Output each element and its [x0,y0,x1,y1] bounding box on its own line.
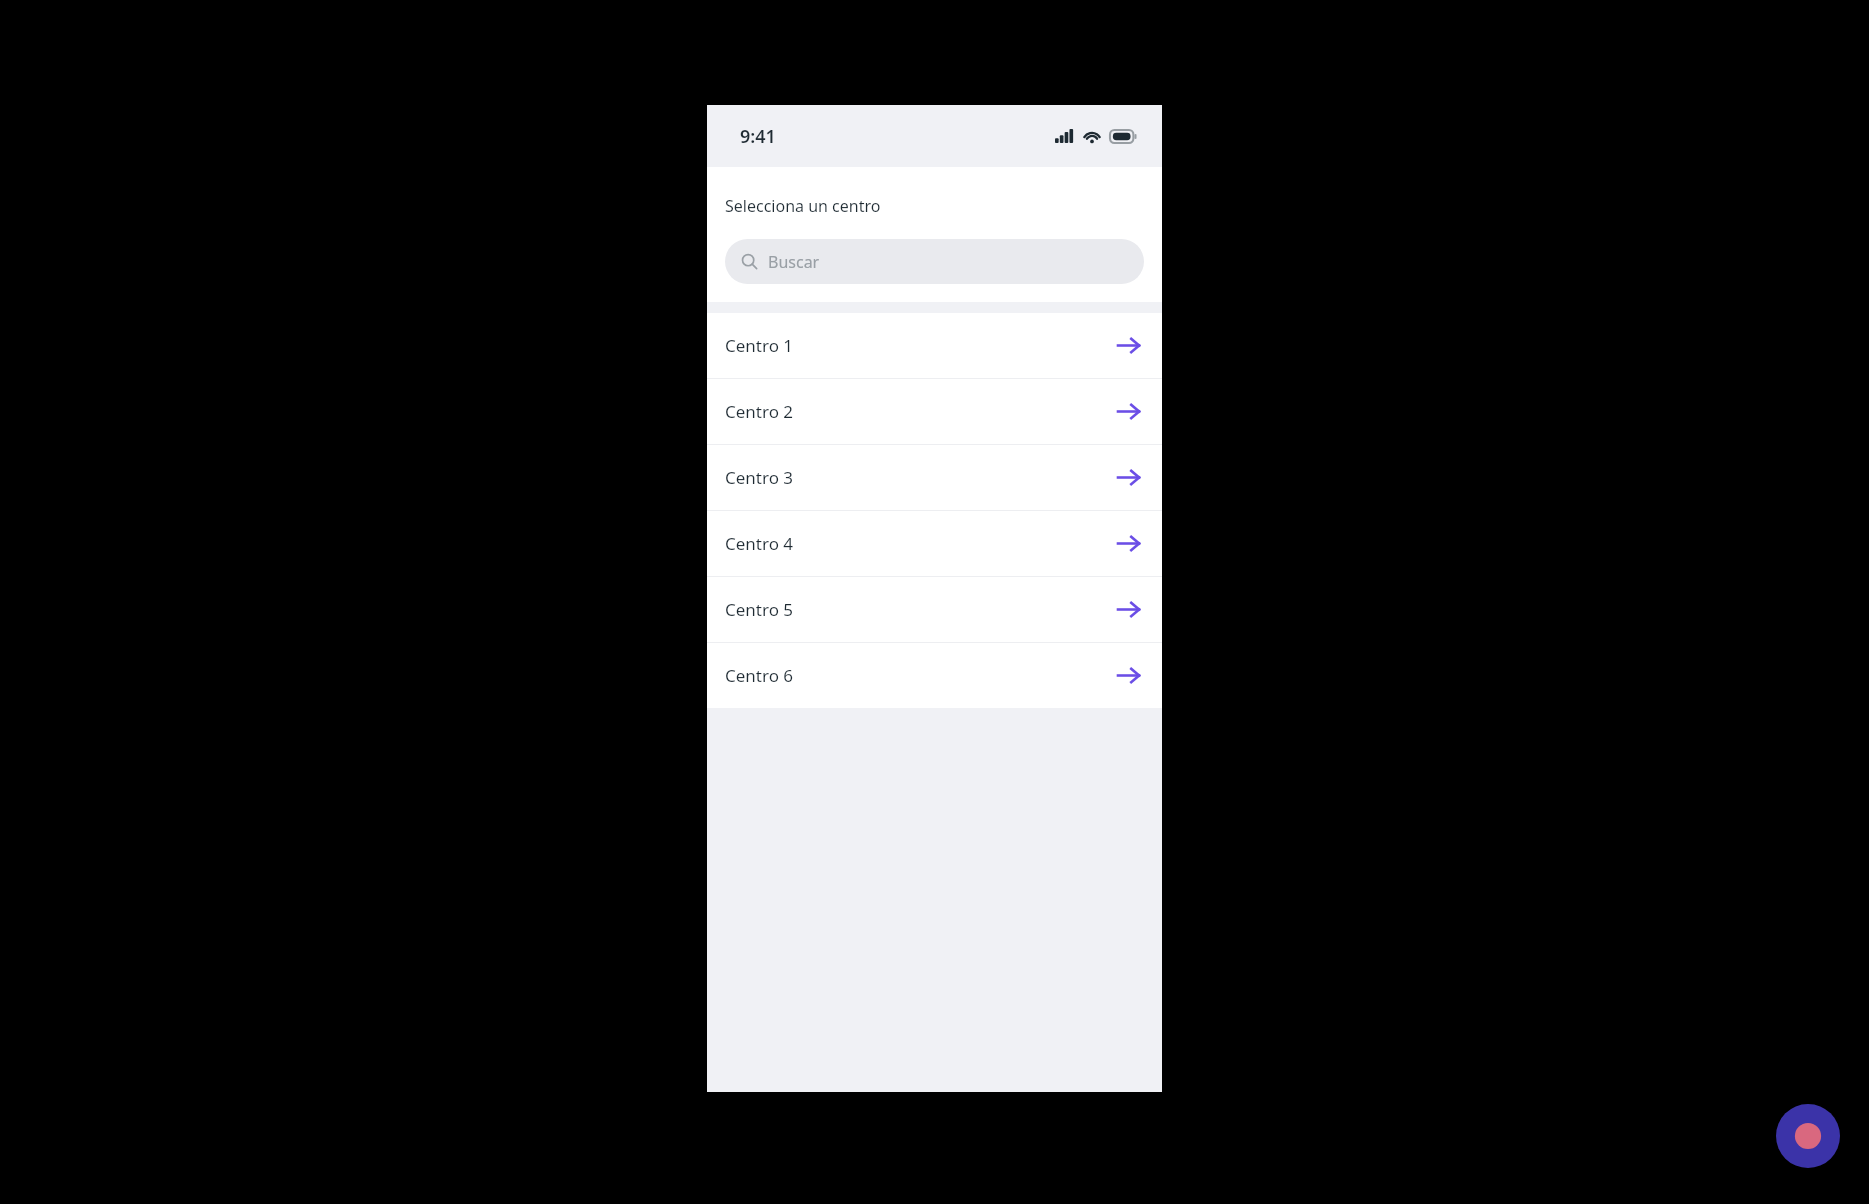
button[interactable]: Centro 6 [707,643,1162,708]
button[interactable]: Buscar [725,239,1144,284]
button[interactable]: Centro 5 [707,577,1162,642]
other: Buscar [741,253,758,270]
staticText: Centro 6 [725,664,1115,687]
other: Abrir [1115,398,1142,425]
staticText: Centro 4 [725,532,1115,555]
staticText: Centro 2 [725,400,1115,423]
other: Abrir [1115,530,1142,557]
button[interactable]: Centro 3 [707,445,1162,510]
staticText: Centro 3 [725,466,1115,489]
button[interactable]: Centro 4 [707,511,1162,576]
staticText: Centro 1 [725,334,1115,357]
other: Abrir [1115,596,1142,623]
staticText: Buscar [768,251,820,273]
staticText: 9:41 [740,124,776,149]
other: Abrir [1115,662,1142,689]
staticText: Centro 5 [725,598,1115,621]
staticText: Selecciona un centro [725,195,881,217]
button[interactable]: Centro 1 [707,313,1162,378]
button[interactable]: Centro 2 [707,379,1162,444]
other: Abrir [1115,464,1142,491]
other: Abrir [1115,332,1142,359]
